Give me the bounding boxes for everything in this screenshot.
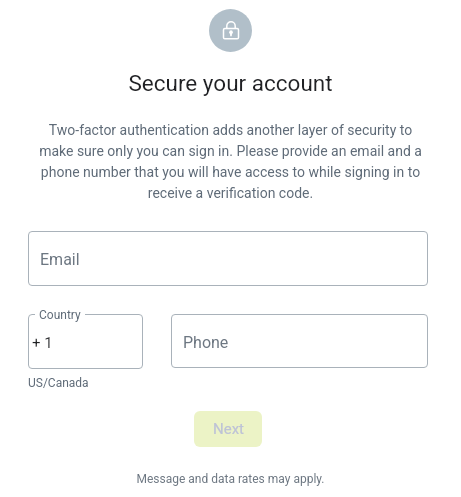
button[interactable]: Next (194, 411, 262, 447)
staticText: Message and data rates may apply. (0, 472, 461, 486)
button[interactable]: Phone (171, 314, 428, 368)
other: Account security (209, 9, 252, 52)
staticText: Country (39, 308, 81, 322)
staticText: Two-factor authentication adds another l… (0, 122, 461, 201)
staticText: Next (213, 420, 245, 438)
staticText: Email (40, 250, 80, 269)
button[interactable]: + 1 (28, 314, 143, 369)
button[interactable]: Email (28, 231, 428, 286)
staticText: + 1 (32, 334, 53, 352)
staticText: US/Canada (28, 376, 89, 390)
staticText: Secure your account (128, 70, 333, 96)
staticText: Phone (183, 333, 229, 352)
